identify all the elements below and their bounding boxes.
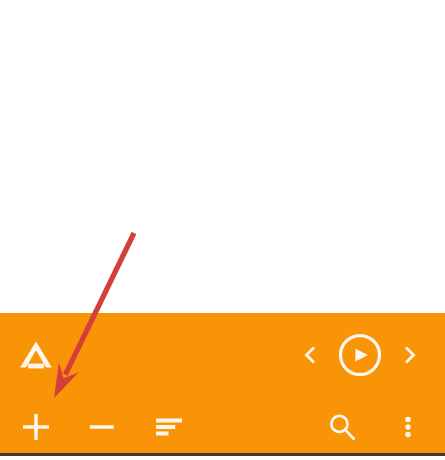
button[interactable]: Previous track: [292, 337, 328, 373]
button[interactable]: More options: [386, 405, 430, 449]
button[interactable]: Add: [14, 405, 58, 449]
button[interactable]: AIMP: [12, 332, 60, 380]
button[interactable]: Search: [320, 405, 364, 449]
button[interactable]: Next track: [392, 337, 428, 373]
button[interactable]: Remove: [80, 405, 124, 449]
button[interactable]: Play: [336, 331, 384, 379]
button[interactable]: Sort: [147, 405, 191, 449]
